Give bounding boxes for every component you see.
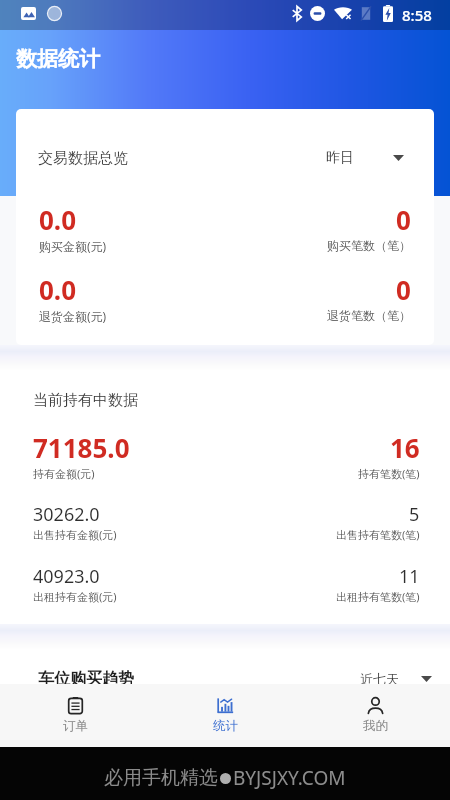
staticText: 退货笔数（笔） (327, 308, 411, 323)
staticText: 30262.0 (33, 502, 100, 527)
staticText: 车位购买趋势 (38, 669, 134, 689)
staticText: 出租持有金额(元) (33, 589, 117, 604)
button[interactable]: 昨日 (326, 149, 404, 167)
staticText: 交易数据总览 (38, 149, 128, 168)
staticText: BYJSJXY.COM (233, 765, 346, 791)
staticText: 0.0 (39, 272, 77, 307)
staticText: 出售持有笔数(笔) (336, 527, 420, 542)
staticText: 71185.0 (33, 430, 130, 465)
staticText: 11 (399, 564, 420, 589)
staticText: 持有笔数(笔) (358, 466, 420, 481)
staticText: 购买笔数（笔） (327, 238, 411, 253)
button[interactable]: 我的 (300, 684, 450, 747)
staticText: 退货金额(元) (39, 308, 107, 324)
staticText: 我的 (363, 718, 388, 734)
staticText: 40923.0 (33, 564, 100, 589)
staticText: 昨日 (326, 149, 354, 167)
staticText: 必用手机精选 (104, 766, 218, 790)
staticText: 出租持有笔数(笔) (336, 589, 420, 604)
staticText: 购买金额(元) (39, 238, 107, 254)
button[interactable]: 近七天 (360, 671, 432, 687)
staticText: 统计 (213, 718, 238, 734)
staticText: 订单 (63, 718, 88, 734)
staticText: 5 (409, 502, 420, 527)
staticText: 8:58 (402, 5, 432, 25)
staticText: 近七天 (360, 671, 399, 687)
staticText: 0 (396, 272, 411, 307)
staticText: 0.0 (39, 202, 77, 237)
staticText: 数据统计 (16, 46, 100, 72)
staticText: 0 (396, 202, 411, 237)
button[interactable]: 订单 (0, 684, 150, 747)
staticText: 16 (390, 430, 420, 465)
staticText: 当前持有中数据 (33, 391, 138, 410)
staticText: 出售持有金额(元) (33, 527, 117, 542)
button[interactable]: 统计 (150, 684, 300, 747)
staticText: 持有金额(元) (33, 466, 95, 481)
